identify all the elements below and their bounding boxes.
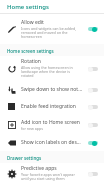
staticText: for new apps (21, 126, 43, 131)
button[interactable]: Off (86, 120, 99, 130)
other: Predictive apps (5, 170, 18, 178)
staticText: Home screen settings (7, 48, 54, 54)
button[interactable]: On (86, 138, 99, 148)
staticText: Rotation (21, 58, 41, 65)
staticText: Allow edit (21, 19, 44, 26)
button[interactable]: Home settings (0, 0, 104, 13)
other: Feed (5, 103, 18, 110)
staticText: Drawer settings (7, 155, 42, 161)
staticText: Allow using the homescreen in landscape … (21, 65, 73, 79)
staticText: Show icon labels on desktop (21, 139, 83, 146)
staticText: Icons and widgets can be added, removed … (21, 26, 77, 40)
button[interactable]: Swipe down (0, 81, 104, 98)
other: Swipe down (5, 86, 18, 94)
staticText: Predictive apps (21, 165, 57, 172)
button[interactable]: Off (86, 169, 99, 179)
staticText: Your favorite apps won't appear until yo… (21, 172, 75, 182)
other: Add icon (5, 121, 18, 129)
other: Rotation (5, 65, 18, 73)
staticText: Add icon to Home screen (21, 119, 80, 126)
other: Labels (5, 139, 18, 147)
button[interactable]: Rotation (0, 56, 104, 81)
other: Edit (5, 25, 18, 34)
staticText: Swipe down to show notific... (21, 86, 83, 93)
button[interactable]: Predictive apps (0, 163, 104, 184)
staticText: Enable feed integration (21, 103, 76, 110)
button[interactable]: Add icon (0, 115, 104, 134)
button[interactable]: Edit (0, 14, 104, 44)
button[interactable]: Labels (0, 134, 104, 151)
button[interactable]: On (86, 24, 99, 34)
button[interactable]: Feed (0, 98, 104, 115)
button[interactable]: Off (86, 64, 99, 74)
button[interactable]: Off (86, 85, 99, 95)
staticText: Home settings (7, 3, 49, 11)
button[interactable]: Off (86, 102, 99, 112)
